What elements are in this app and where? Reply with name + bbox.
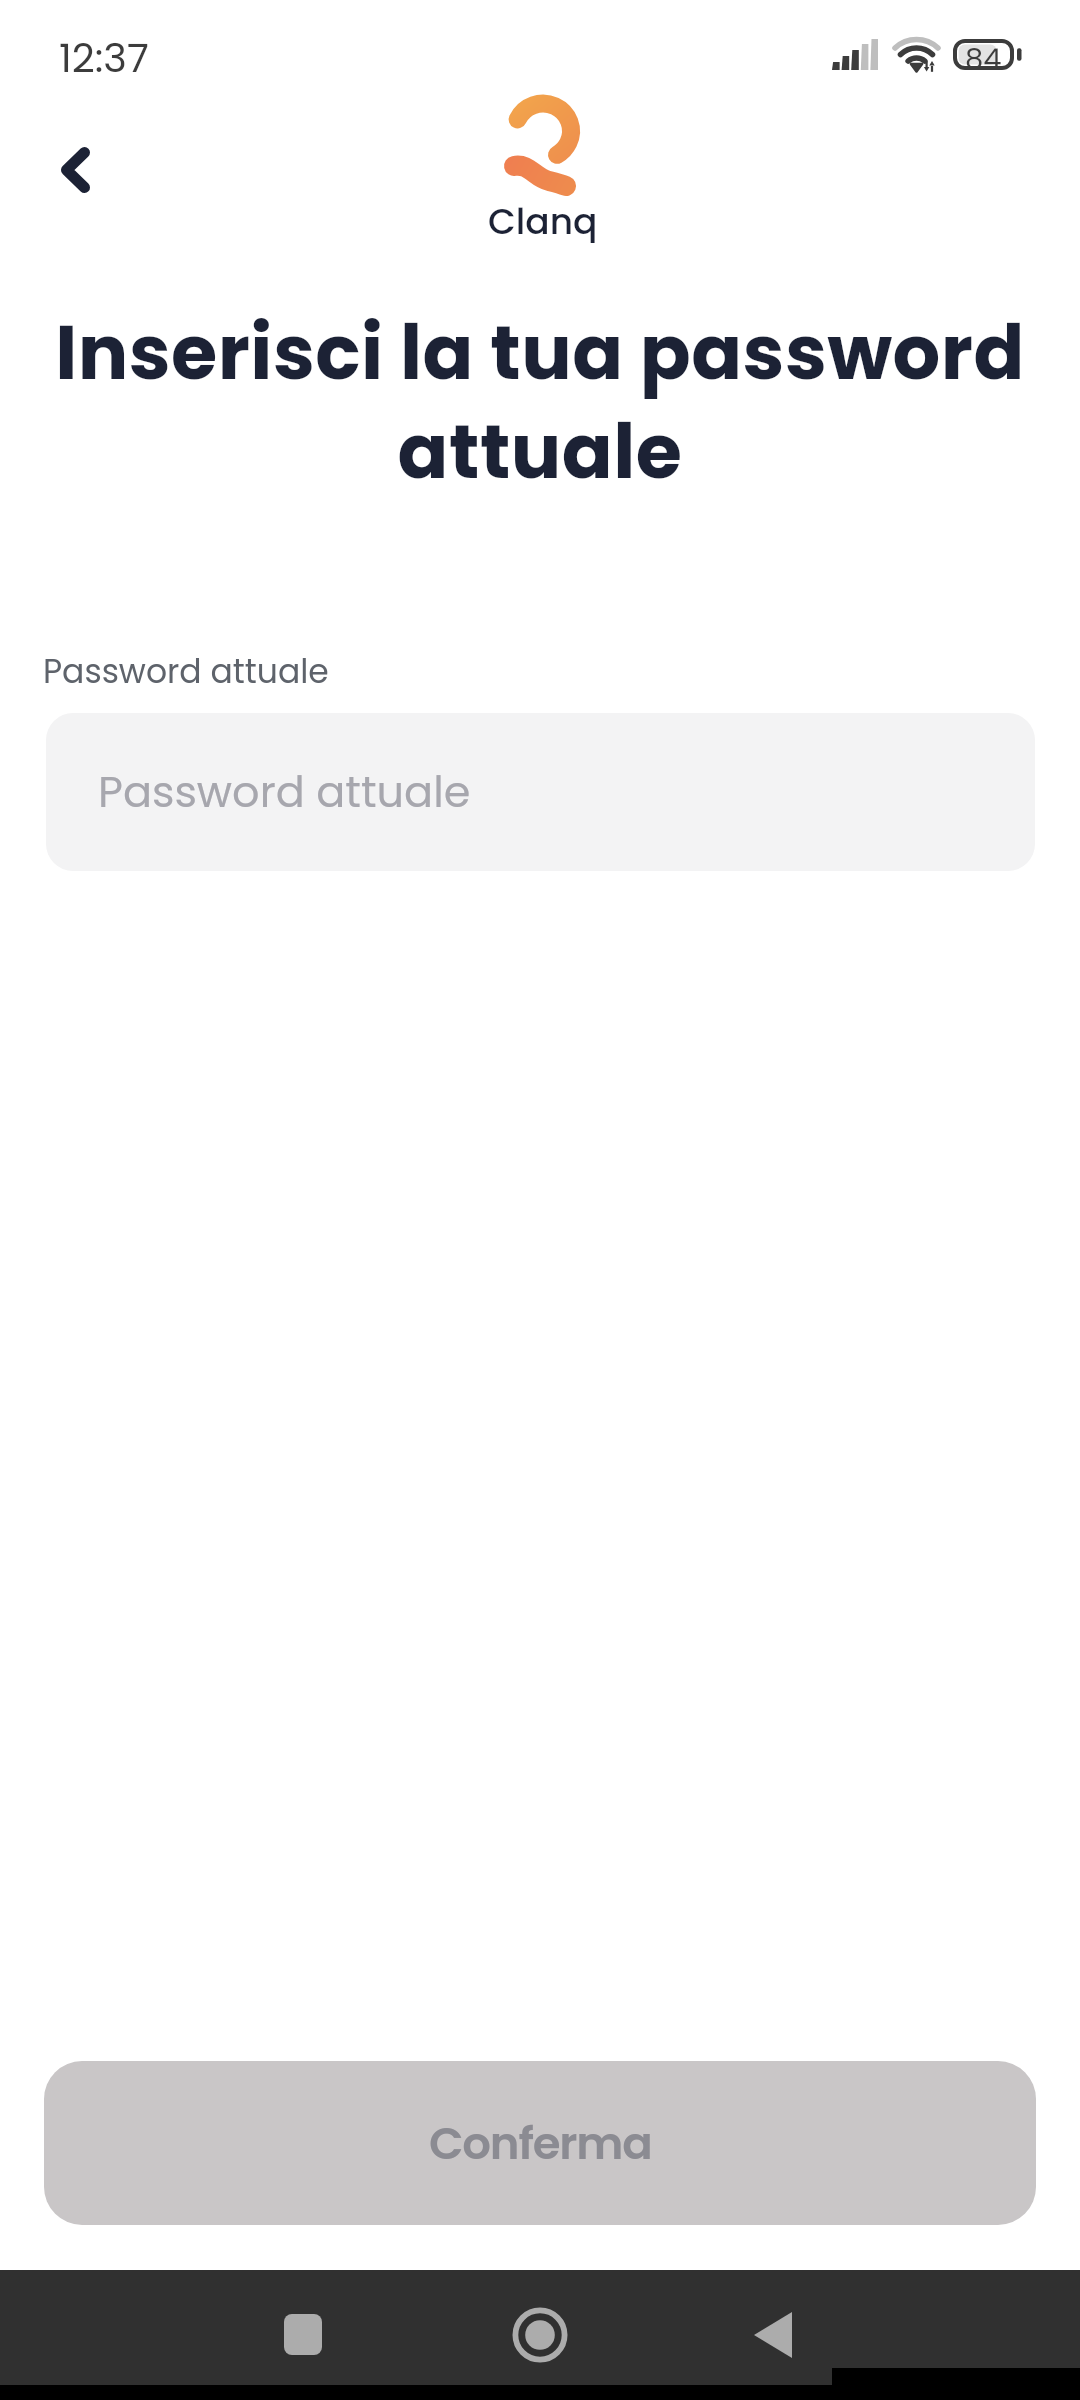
button[interactable]: Home <box>485 2270 595 2400</box>
button[interactable]: Password attuale <box>46 713 1035 871</box>
button[interactable]: Back <box>718 2270 828 2400</box>
staticText: Conferma <box>429 2112 652 2175</box>
staticText: Inserisci la tua password attuale <box>54 300 1026 505</box>
staticText: Clanq <box>488 196 598 246</box>
staticText: 84 <box>965 39 1002 70</box>
staticText: Password attuale <box>98 762 471 822</box>
staticText: Password attuale <box>43 648 329 694</box>
staticText: 12:37 <box>59 30 149 86</box>
button[interactable]: Conferma <box>44 2061 1036 2225</box>
button[interactable]: Back <box>35 128 116 212</box>
button[interactable]: Recent apps <box>248 2270 358 2400</box>
